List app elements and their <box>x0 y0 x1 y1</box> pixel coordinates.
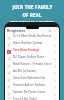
staticText: Hamari Adhuri Kahani <box>13 83 46 87</box>
button[interactable]: Tere Bina Zindagi <box>5 48 59 55</box>
button[interactable]: Ringtones <box>7 28 30 33</box>
button[interactable]: Download Tu Hi Meri Shab Hai Remix <box>53 36 57 40</box>
staticText: Tere Bina Zindagi <box>13 48 39 52</box>
button[interactable]: Download Tere Bina Zindagi <box>53 50 57 54</box>
staticText: Tum Hi Ho Violin <box>13 97 38 100</box>
button[interactable]: More options <box>53 29 57 33</box>
staticText: Zara Zara Behekta Hai <box>13 76 46 80</box>
button[interactable]: Download Mere Rashke Qamar <box>53 43 57 47</box>
button[interactable]: Download Tum Hi Ho Violin <box>53 97 57 100</box>
staticText: Dil Diyan Gallan Flute <box>13 55 44 59</box>
button[interactable]: Mere Rashke Qamar <box>5 41 59 48</box>
staticText: RINGTONE LOVERS <box>10 20 54 26</box>
button[interactable]: Tu Hi Meri Shab Hai Remix <box>5 34 59 41</box>
button[interactable]: Download Aa Bhi Ja Sanam <box>53 71 57 75</box>
staticText: Tu Hi Meri Shab Hai Remix <box>13 34 52 38</box>
button[interactable]: Download Sanam Re Piano Cover <box>53 92 57 96</box>
button[interactable]: Download Nadi Kinare - Female Voice <box>53 64 57 68</box>
button[interactable]: Download Zara Zara Behekta Hai <box>53 78 57 82</box>
button[interactable]: Search <box>48 29 52 33</box>
staticText: Aa Bhi Ja Sanam <box>13 69 37 73</box>
button[interactable]: Aa Bhi Ja Sanam <box>5 69 59 76</box>
button[interactable]: Tum Hi Ho Violin <box>5 97 59 100</box>
button[interactable]: Download Hamari Adhuri Kahani <box>53 85 57 89</box>
button[interactable]: Zara Zara Behekta Hai <box>5 76 59 83</box>
staticText: OF REAL <box>22 12 42 18</box>
button[interactable]: Dil Diyan Gallan Flute <box>5 55 59 62</box>
staticText: Nadi Kinare - Female Voice <box>13 62 52 66</box>
staticText: Sanam Re Piano Cover <box>13 90 46 94</box>
staticText: Mere Rashke Qamar <box>13 41 43 45</box>
staticText: Ringtones <box>7 28 26 33</box>
button[interactable]: Sanam Re Piano Cover <box>5 90 59 97</box>
button[interactable]: Nadi Kinare - Female Voice <box>5 62 59 69</box>
staticText: JOIN THE FAMILY <box>12 4 53 10</box>
button[interactable]: Hamari Adhuri Kahani <box>5 83 59 90</box>
button[interactable]: Download Dil Diyan Gallan Flute <box>53 57 57 61</box>
